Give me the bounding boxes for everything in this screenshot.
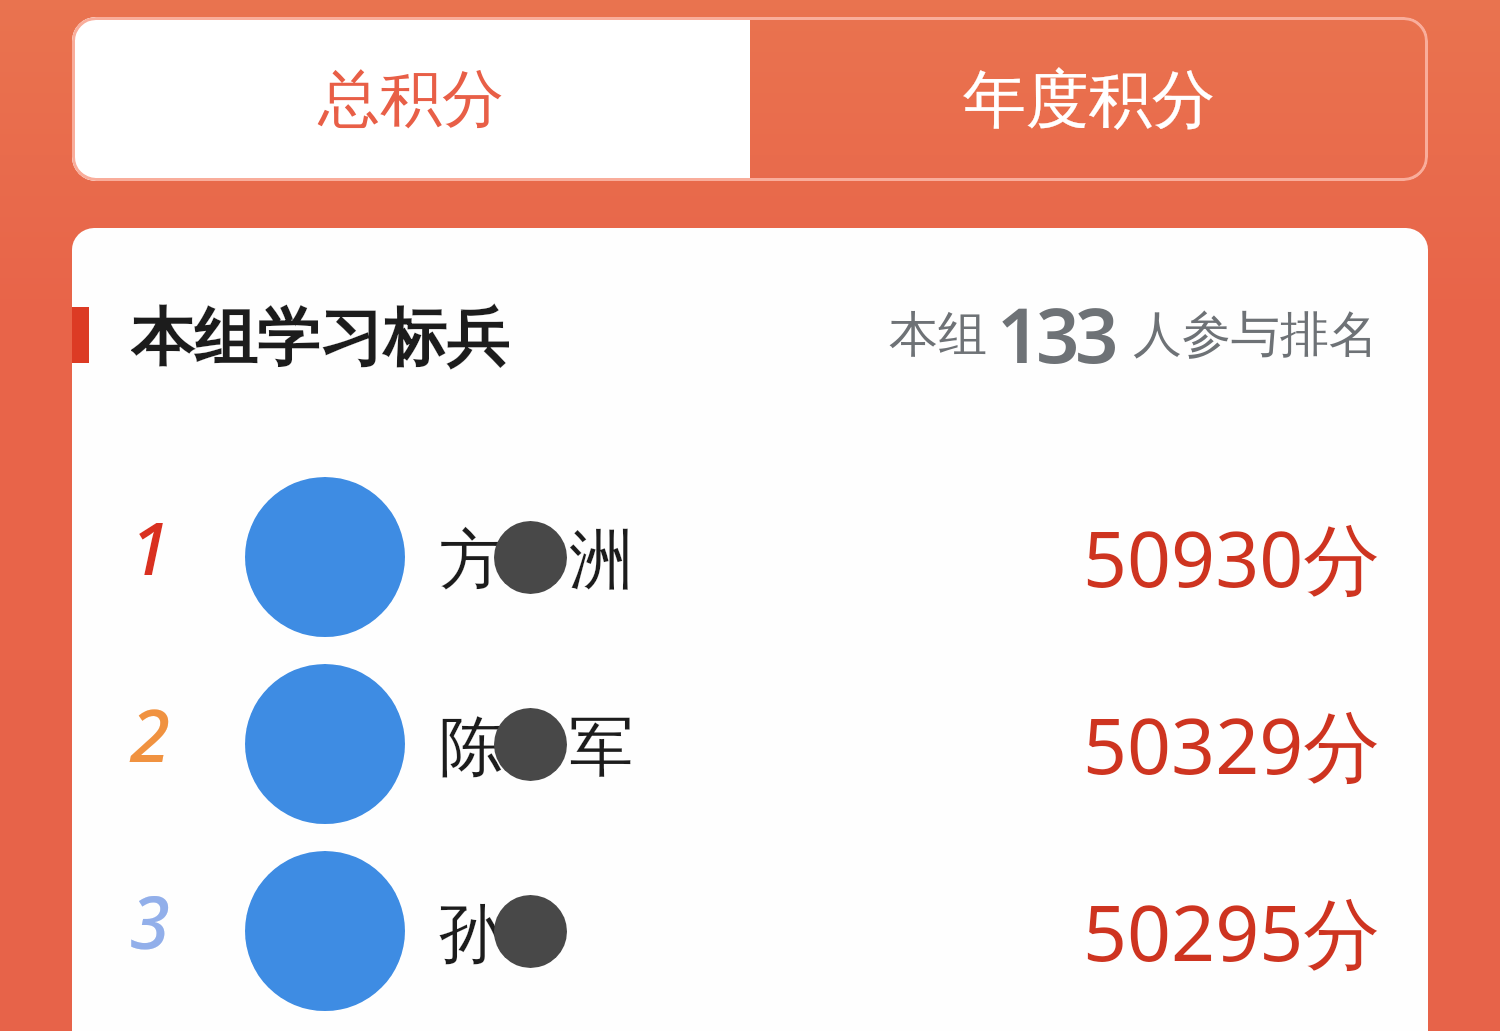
- staticText: 陈 军: [439, 700, 634, 789]
- other: 头像: [245, 851, 405, 1011]
- staticText: 人参与排名: [1133, 304, 1378, 366]
- staticText: 本组学习标兵: [131, 298, 509, 372]
- button[interactable]: 年度积分: [750, 17, 1428, 181]
- staticText: 50930分: [1083, 505, 1381, 610]
- staticText: 2: [130, 685, 170, 783]
- staticText: 方 洲: [439, 513, 634, 602]
- staticText: 3: [130, 872, 170, 970]
- staticText: 50329分: [1083, 692, 1381, 797]
- button[interactable]: 总积分: [72, 17, 750, 181]
- staticText: 133: [997, 282, 1114, 386]
- other: 头像: [245, 477, 405, 637]
- button[interactable]: 2: [72, 651, 1428, 838]
- button[interactable]: 1: [72, 464, 1428, 651]
- staticText: 总积分: [318, 60, 504, 138]
- button[interactable]: 3: [72, 838, 1428, 1025]
- staticText: 50295分: [1083, 879, 1381, 984]
- staticText: 年度积分: [963, 60, 1215, 139]
- staticText: 1: [130, 498, 170, 596]
- other: 头像: [245, 664, 405, 824]
- staticText: 孙: [439, 887, 569, 976]
- staticText: 本组: [889, 304, 987, 366]
